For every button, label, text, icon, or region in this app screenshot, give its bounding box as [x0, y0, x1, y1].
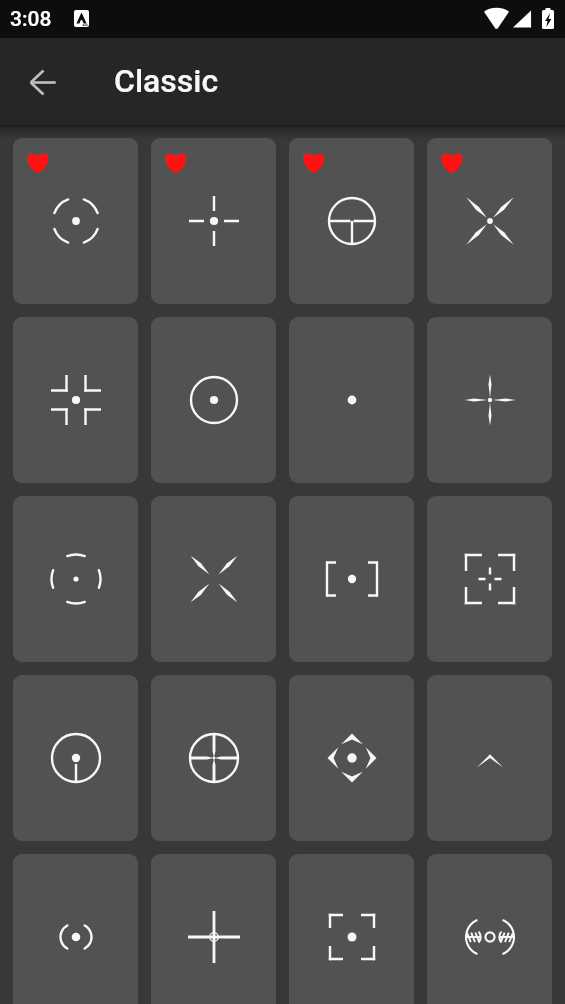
button[interactable]: Reticle 4 — [427, 138, 552, 304]
button[interactable]: Reticle 5 — [13, 317, 138, 483]
button[interactable]: Reticle 9 — [13, 496, 138, 662]
button[interactable]: Reticle 6 — [151, 317, 276, 483]
staticText: Classic — [114, 62, 219, 100]
button[interactable]: Reticle 14 — [151, 675, 276, 841]
staticText: 3:08 — [10, 7, 52, 32]
button[interactable]: Reticle 11 — [289, 496, 414, 662]
button[interactable]: Back — [15, 54, 71, 110]
button[interactable]: Reticle 8 — [427, 317, 552, 483]
button[interactable]: Reticle 17 — [13, 854, 138, 1004]
button[interactable]: Reticle 20 — [427, 854, 552, 1004]
button[interactable]: Reticle 7 — [289, 317, 414, 483]
button[interactable]: Reticle 1 — [13, 138, 138, 304]
button[interactable]: Reticle 18 — [151, 854, 276, 1004]
button[interactable]: Reticle 16 — [427, 675, 552, 841]
button[interactable]: Reticle 13 — [13, 675, 138, 841]
button[interactable]: Reticle 12 — [427, 496, 552, 662]
button[interactable]: Reticle 19 — [289, 854, 414, 1004]
button[interactable]: Reticle 2 — [151, 138, 276, 304]
button[interactable]: Reticle 15 — [289, 675, 414, 841]
button[interactable]: Reticle 3 — [289, 138, 414, 304]
button[interactable]: Reticle 10 — [151, 496, 276, 662]
